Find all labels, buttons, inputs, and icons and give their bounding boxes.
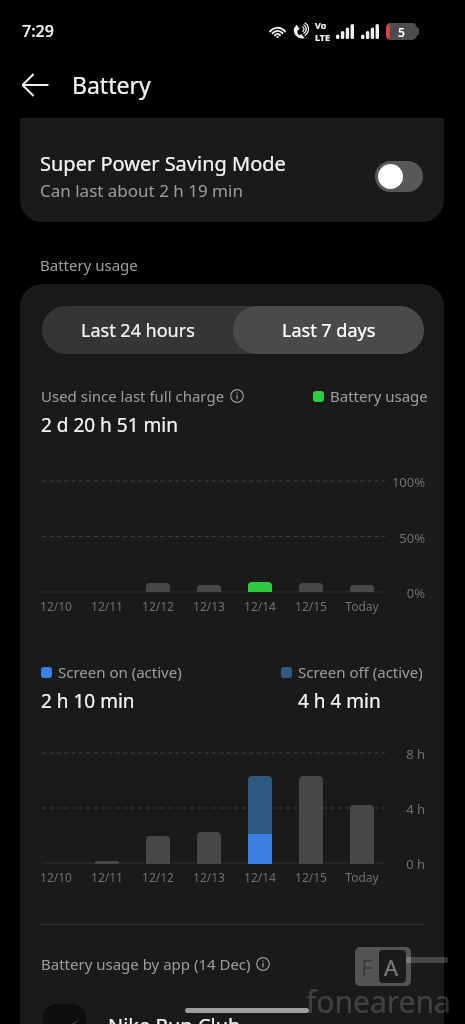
staticText: 12/10	[31, 598, 81, 614]
staticText: Vo	[315, 19, 327, 31]
staticText: A	[384, 952, 399, 982]
staticText: LTE	[315, 31, 331, 43]
staticText: 12/12	[133, 598, 183, 614]
staticText: 12/10	[31, 869, 81, 885]
staticText: 12/13	[184, 598, 234, 614]
staticText: Can last about 2 h 19 min	[40, 179, 243, 202]
staticText: 4 h	[365, 800, 425, 818]
staticText: 5	[398, 24, 405, 40]
button[interactable]: Super Power Saving Mode	[20, 118, 444, 222]
button[interactable]: Back	[7, 57, 63, 113]
staticText: 4 h 4 min	[298, 688, 381, 714]
staticText: fonearena	[306, 981, 451, 1022]
staticText: 12/15	[286, 869, 336, 885]
staticText: Battery usage	[330, 386, 428, 406]
staticText: Last 7 days	[282, 318, 376, 343]
button[interactable]: Super Power Saving Mode	[375, 161, 423, 192]
staticText: Battery usage	[40, 255, 138, 275]
button[interactable]: Last 7 days	[233, 306, 424, 354]
staticText: 2 d 20 h 51 min	[41, 412, 178, 438]
staticText: Last 24 hours	[81, 318, 195, 343]
staticText: Used since last full charge	[41, 386, 225, 406]
staticText: Today	[337, 598, 387, 614]
staticText: Super Power Saving Mode	[40, 150, 286, 177]
staticText: 12/11	[82, 598, 132, 614]
staticText: 8 h	[365, 745, 425, 763]
staticText: Battery	[72, 69, 151, 100]
staticText: Battery usage by app (14 Dec)	[41, 954, 251, 974]
staticText: 12/13	[184, 869, 234, 885]
button[interactable]: Last 24 hours	[42, 306, 233, 354]
staticText: 0 h	[365, 855, 425, 873]
staticText: 12/15	[286, 598, 336, 614]
staticText: 7:29	[22, 20, 54, 42]
staticText: 12/11	[82, 869, 132, 885]
staticText: 12/12	[133, 869, 183, 885]
staticText: 50%	[365, 529, 425, 547]
staticText: Nike Run Club	[108, 1012, 241, 1024]
staticText: 0%	[365, 584, 425, 602]
staticText: Screen on (active)	[58, 662, 182, 682]
staticText: 12/14	[235, 598, 285, 614]
button[interactable]: Nike Run Club	[20, 997, 444, 1024]
staticText: 100%	[365, 473, 425, 491]
staticText: Today	[337, 869, 387, 885]
staticText: 12/14	[235, 869, 285, 885]
staticText: F	[361, 952, 373, 982]
staticText: Screen off (active)	[298, 662, 423, 682]
staticText: 2 h 10 min	[41, 688, 135, 714]
